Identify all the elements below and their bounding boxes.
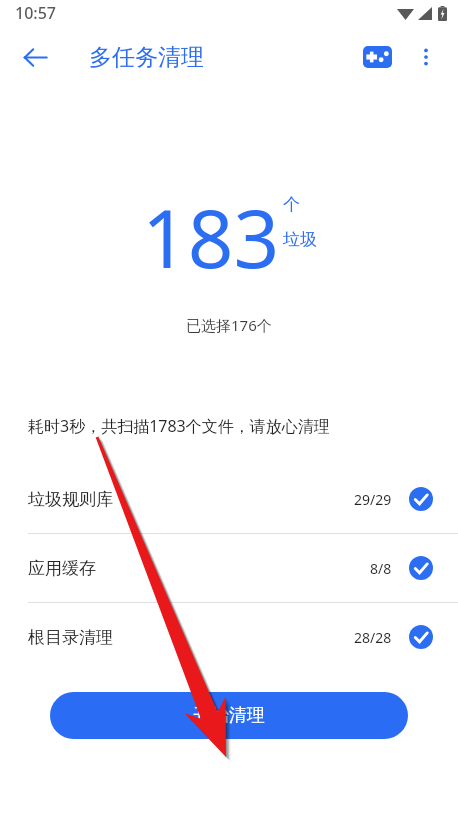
button[interactable]: Back: [12, 34, 58, 80]
button[interactable]: More options: [404, 35, 448, 79]
button[interactable]: 应用缓存: [0, 534, 458, 602]
staticText: 垃圾规则库: [28, 489, 113, 510]
staticText: 垃圾: [283, 229, 317, 250]
staticText: 8/8: [370, 559, 392, 578]
staticText: 根目录清理: [28, 627, 113, 648]
button[interactable]: 开始清理: [50, 692, 408, 739]
staticText: 29/29: [354, 490, 392, 509]
staticText: 28/28: [354, 628, 392, 647]
staticText: 开始清理: [193, 704, 265, 727]
staticText: 10:57: [15, 2, 56, 24]
staticText: 多任务清理: [89, 43, 204, 72]
staticText: 应用缓存: [28, 558, 96, 579]
staticText: 个: [283, 194, 300, 215]
staticText: 耗时3秒，共扫描1783个文件，请放心清理: [28, 415, 330, 437]
staticText: 已选择176个: [186, 315, 272, 335]
staticText: 183: [142, 182, 280, 291]
button[interactable]: 根目录清理: [0, 603, 458, 671]
button[interactable]: Game mode: [356, 36, 398, 78]
button[interactable]: 垃圾规则库: [0, 465, 458, 533]
